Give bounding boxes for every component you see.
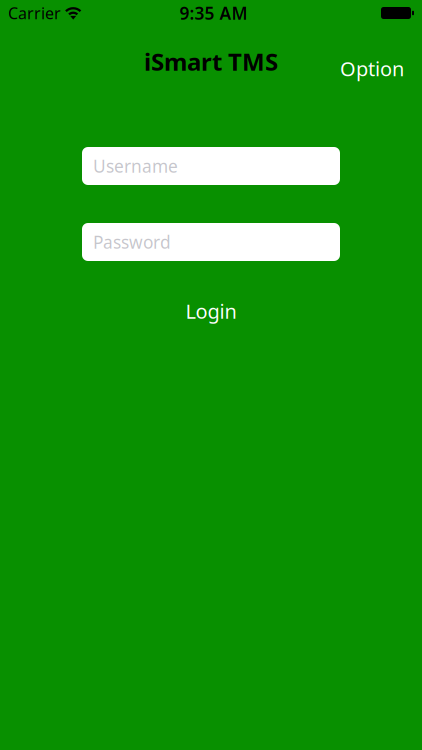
staticText: Login	[185, 298, 236, 324]
staticText: 9:35 AM	[179, 1, 247, 24]
staticText: Carrier	[8, 2, 61, 24]
button[interactable]: Option	[333, 48, 411, 89]
button[interactable]: Login	[82, 296, 340, 326]
button[interactable]: Password	[82, 223, 340, 261]
staticText: Username	[93, 154, 178, 177]
staticText: Option	[340, 55, 404, 82]
staticText: iSmart TMS	[144, 46, 278, 77]
button[interactable]: Username	[82, 147, 340, 185]
staticText: Password	[93, 230, 171, 253]
